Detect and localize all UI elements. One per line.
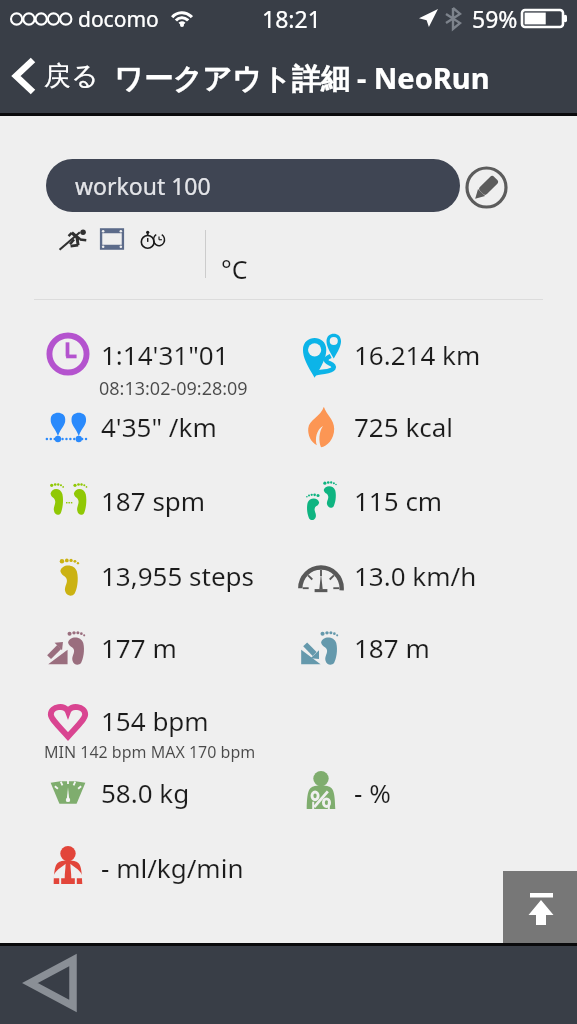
button[interactable]: 4'35" /km <box>46 402 286 450</box>
staticText: °C <box>221 252 248 286</box>
staticText: 13,955 steps <box>101 558 255 593</box>
staticText: - ml/kg/min <box>101 850 244 885</box>
button[interactable]: 58.0 kg <box>46 768 286 816</box>
button[interactable]: 戻る <box>12 52 99 100</box>
staticText: 177 m <box>101 630 177 665</box>
button[interactable]: 13,955 steps <box>46 551 286 599</box>
staticText: 59% <box>472 3 518 34</box>
staticText: ワークアウト詳細 - NeoRun <box>114 58 490 98</box>
staticText: 18:21 <box>262 3 321 34</box>
button[interactable]: Edit <box>465 166 508 209</box>
button[interactable]: 1:14'31"01 <box>46 330 286 378</box>
button[interactable]: - ml/kg/min <box>46 843 286 891</box>
button[interactable]: 187 m <box>299 623 539 671</box>
staticText: 154 bpm <box>101 703 209 738</box>
staticText: 725 kcal <box>354 409 454 444</box>
button[interactable]: 154 bpm <box>46 696 286 744</box>
button[interactable]: 725 kcal <box>299 402 539 450</box>
button[interactable]: 187 spm <box>46 476 286 524</box>
staticText: 1:14'31"01 <box>101 337 229 372</box>
staticText: MIN 142 bpm MAX 170 bpm <box>44 741 256 763</box>
staticText: workout 100 <box>75 170 211 201</box>
staticText: 187 m <box>354 630 430 665</box>
button[interactable]: 13.0 km/h <box>299 551 539 599</box>
button[interactable]: 115 cm <box>299 476 539 524</box>
staticText: 115 cm <box>354 483 443 518</box>
button[interactable]: Scroll to top <box>503 871 577 943</box>
staticText: docomo <box>78 5 159 34</box>
button[interactable]: 177 m <box>46 623 286 671</box>
staticText: 16.214 km <box>354 337 481 372</box>
staticText: 13.0 km/h <box>354 558 477 593</box>
staticText: - % <box>354 775 391 810</box>
staticText: 58.0 kg <box>101 775 190 810</box>
staticText: 4'35" /km <box>101 409 217 444</box>
staticText: 戻る <box>44 59 99 93</box>
button[interactable]: - % <box>299 768 539 816</box>
staticText: 187 spm <box>101 483 206 518</box>
button[interactable]: Back <box>24 954 80 1012</box>
staticText: 08:13:02-09:28:09 <box>99 376 248 401</box>
button[interactable]: workout 100 <box>46 159 460 212</box>
button[interactable]: 16.214 km <box>299 330 539 378</box>
